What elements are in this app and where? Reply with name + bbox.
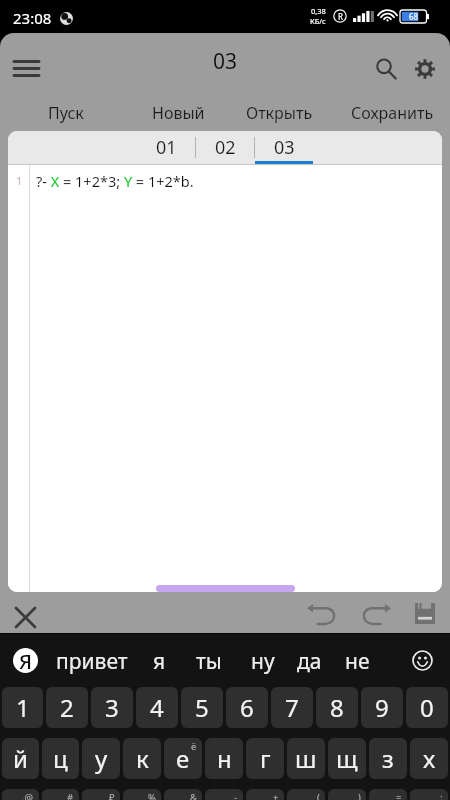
button[interactable]: ты [167, 641, 251, 681]
staticText: + [273, 791, 279, 800]
button[interactable]: 0 [406, 687, 448, 728]
button[interactable]: л [287, 789, 325, 800]
button[interactable]: Пуск [18, 95, 114, 131]
button[interactable]: 9 [361, 687, 403, 728]
staticText: 7 [285, 691, 299, 724]
button[interactable]: 02 [196, 131, 254, 164]
staticText: 8 [330, 691, 344, 724]
staticText: = [396, 791, 402, 800]
staticText: # [67, 791, 74, 800]
button[interactable]: 03 [255, 131, 313, 164]
staticText: ы [51, 793, 70, 800]
button[interactable]: ж [369, 789, 407, 800]
staticText: ₽ [109, 791, 115, 800]
button[interactable]: ш [287, 738, 325, 779]
button[interactable]: э [410, 789, 448, 800]
button[interactable]: ф [2, 789, 39, 800]
button[interactable]: з [369, 738, 407, 779]
button[interactable]: ы [42, 789, 79, 800]
button[interactable]: у [82, 738, 120, 779]
staticText: щ [336, 742, 358, 775]
button[interactable]: й [2, 738, 39, 779]
button[interactable]: к [123, 738, 161, 779]
staticText: 4 [150, 691, 164, 724]
staticText: ж [379, 793, 398, 800]
button[interactable]: 01 [137, 131, 195, 164]
staticText: Открыть [246, 102, 313, 124]
staticText: привет [56, 647, 128, 676]
button[interactable]: Emoji [409, 647, 436, 674]
button[interactable]: е [164, 738, 202, 779]
button[interactable]: Settings [403, 47, 447, 91]
button[interactable]: г [246, 738, 284, 779]
button[interactable]: о [246, 789, 284, 800]
staticText: 0 [420, 691, 434, 724]
button[interactable]: 7 [271, 687, 313, 728]
button[interactable]: щ [328, 738, 366, 779]
staticText: Сохранить [351, 102, 434, 124]
staticText: ты [196, 647, 222, 676]
staticText: : [440, 791, 443, 800]
staticText: ш [295, 742, 317, 775]
button[interactable]: п [164, 789, 202, 800]
staticText: ?- X = 1+2*3; Y = 1+2*b. [36, 171, 194, 191]
staticText: Я [19, 648, 33, 673]
staticText: 01 [156, 135, 177, 160]
staticText: 3 [105, 691, 119, 724]
button[interactable]: н [205, 738, 243, 779]
staticText: й [13, 742, 28, 775]
button[interactable]: Сохранить [344, 95, 440, 131]
button[interactable]: 3 [91, 687, 133, 728]
button[interactable]: да [267, 641, 351, 681]
button[interactable]: Yandex [13, 648, 38, 673]
button[interactable]: а [123, 789, 161, 800]
staticText: R [338, 11, 343, 22]
button[interactable]: в [82, 789, 120, 800]
button[interactable]: ну [221, 641, 305, 681]
button[interactable]: Close [8, 600, 42, 634]
button[interactable]: р [205, 789, 243, 800]
button[interactable]: х [410, 738, 448, 779]
button[interactable]: привет [50, 641, 134, 681]
staticText: 1 [16, 173, 23, 188]
staticText: Пуск [48, 102, 84, 124]
staticText: не [345, 647, 370, 676]
button[interactable]: не [315, 641, 399, 681]
button[interactable]: Menu [4, 46, 48, 90]
button[interactable]: Новый [130, 95, 226, 131]
button[interactable]: д [328, 789, 366, 800]
button[interactable]: 5 [181, 687, 223, 728]
button[interactable]: 4 [136, 687, 178, 728]
staticText: ) [358, 791, 361, 800]
staticText: 1 [16, 691, 30, 724]
button[interactable]: Открыть [231, 95, 327, 131]
staticText: з [382, 742, 394, 775]
staticText: е [176, 742, 190, 775]
staticText: % [148, 791, 156, 800]
staticText: 6 [240, 691, 254, 724]
button[interactable]: Search [364, 47, 408, 91]
button[interactable]: я [117, 641, 201, 681]
staticText: 2 [60, 691, 74, 724]
staticText: ф [12, 793, 30, 800]
staticText: 03 [274, 135, 295, 160]
staticText: п [176, 793, 191, 800]
button[interactable]: 2 [46, 687, 88, 728]
button[interactable]: Undo [301, 593, 345, 634]
button[interactable]: Redo [353, 593, 397, 634]
button[interactable]: 6 [226, 687, 268, 728]
staticText: & [190, 791, 197, 800]
staticText: 02 [215, 135, 236, 160]
button[interactable]: ц [42, 738, 79, 779]
button[interactable]: Save [405, 593, 445, 633]
staticText: ( [317, 791, 320, 800]
staticText: 5 [195, 691, 209, 724]
staticText: ну [251, 647, 275, 676]
button[interactable]: 8 [316, 687, 358, 728]
button[interactable]: 1 [2, 687, 43, 728]
